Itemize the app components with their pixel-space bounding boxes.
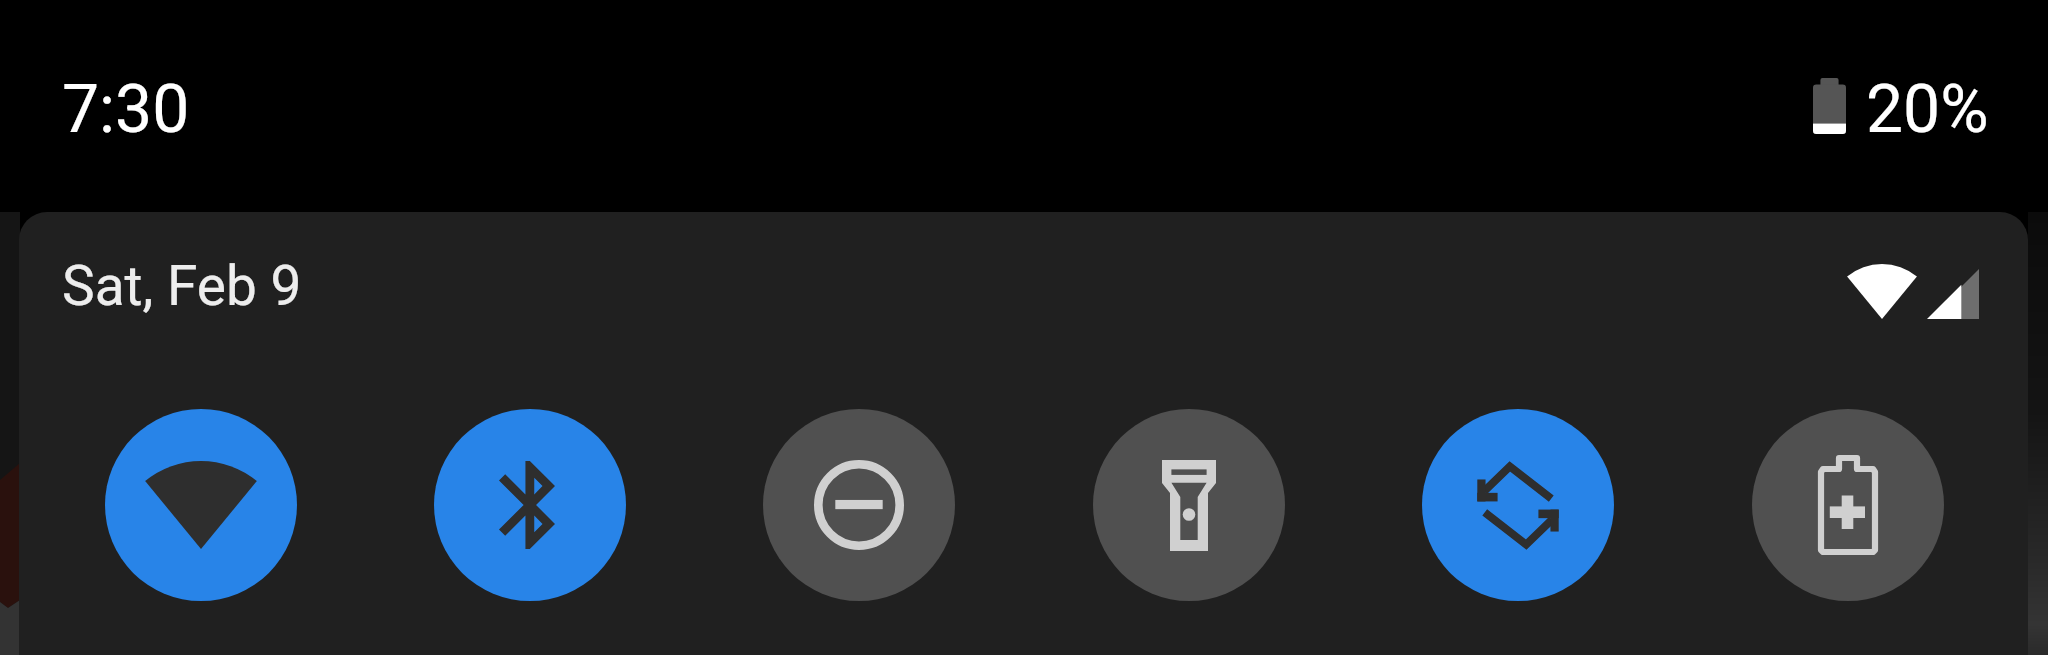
- staticText: Sat, Feb 9: [62, 254, 302, 318]
- button[interactable]: Bluetooth: [434, 409, 626, 601]
- button[interactable]: Auto rotate: [1422, 409, 1614, 601]
- button[interactable]: Do not disturb: [763, 409, 955, 601]
- button[interactable]: Battery saver: [1752, 409, 1944, 601]
- button[interactable]: Wi-Fi: [105, 409, 297, 601]
- staticText: 20%: [1866, 71, 1989, 148]
- staticText: 7:30: [62, 71, 190, 148]
- button[interactable]: Flashlight: [1093, 409, 1285, 601]
